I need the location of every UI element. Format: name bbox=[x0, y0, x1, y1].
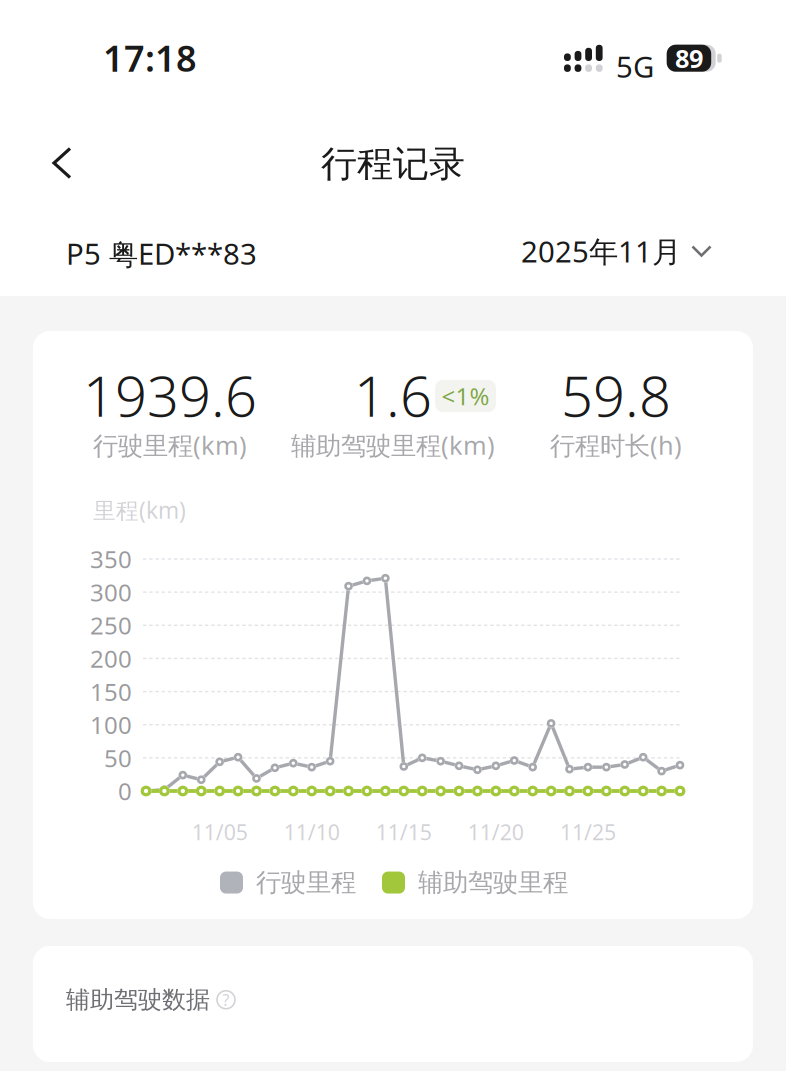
button[interactable]: About assisted-driving data bbox=[217, 991, 235, 1009]
staticText: 辅助驾驶数据 bbox=[66, 985, 210, 1014]
staticText: 2025年11月 bbox=[521, 231, 681, 270]
staticText: 350 bbox=[90, 543, 132, 575]
staticText: 50 bbox=[104, 742, 132, 774]
staticText: 300 bbox=[90, 576, 132, 608]
staticText: 行驶里程(km) bbox=[93, 428, 247, 462]
staticText: 89 bbox=[675, 41, 703, 75]
staticText: 59.8 bbox=[561, 358, 671, 432]
staticText: 11/25 bbox=[560, 818, 616, 846]
staticText: 行程时长(h) bbox=[550, 428, 682, 462]
staticText: 5G bbox=[616, 47, 654, 86]
staticText: 250 bbox=[90, 609, 132, 641]
staticText: 11/20 bbox=[468, 818, 524, 846]
staticText: 11/05 bbox=[192, 818, 248, 846]
staticText: 1.6 bbox=[354, 358, 432, 432]
staticText: 11/15 bbox=[376, 818, 432, 846]
button[interactable]: 2025年11月 bbox=[521, 228, 712, 274]
staticText: 行驶里程 bbox=[256, 867, 356, 898]
staticText: 0 bbox=[118, 775, 132, 807]
staticText: 行程记录 bbox=[321, 142, 465, 186]
staticText: 100 bbox=[90, 709, 132, 741]
staticText: ? bbox=[222, 989, 229, 1010]
staticText: 17:18 bbox=[103, 34, 197, 82]
staticText: P5 粤ED***83 bbox=[66, 234, 257, 273]
staticText: 辅助驾驶里程 bbox=[418, 867, 568, 898]
staticText: 150 bbox=[90, 676, 132, 707]
staticText: 200 bbox=[90, 642, 132, 674]
staticText: 1939.6 bbox=[83, 358, 257, 432]
staticText: 11/10 bbox=[284, 818, 340, 846]
staticText: 辅助驾驶里程(km) bbox=[291, 428, 495, 462]
staticText: 里程(km) bbox=[93, 495, 186, 525]
staticText: <1% bbox=[441, 380, 489, 412]
button[interactable]: Back bbox=[34, 135, 90, 191]
